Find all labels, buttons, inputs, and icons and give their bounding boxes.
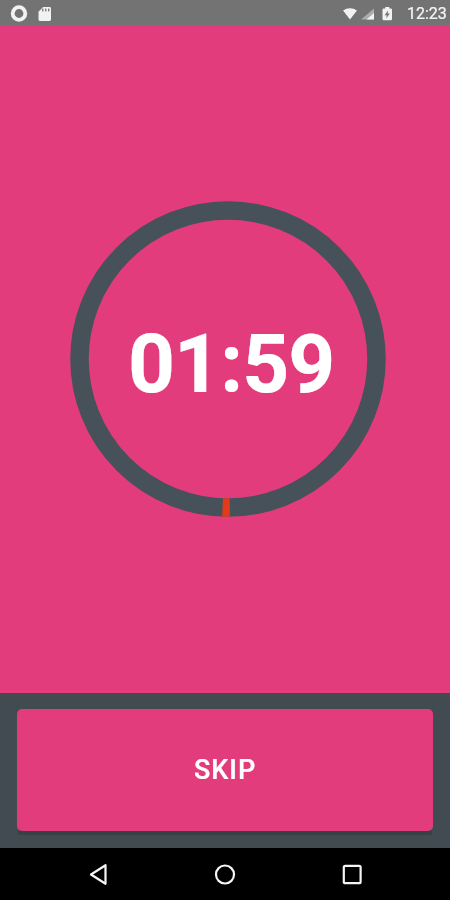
staticText: SKIP bbox=[194, 754, 257, 786]
button[interactable] bbox=[324, 848, 390, 900]
button[interactable] bbox=[60, 848, 126, 900]
staticText: 12:23 bbox=[407, 4, 447, 23]
button[interactable]: SKIP bbox=[17, 709, 433, 831]
button[interactable] bbox=[187, 848, 264, 900]
staticText: 01:59 bbox=[128, 316, 335, 412]
